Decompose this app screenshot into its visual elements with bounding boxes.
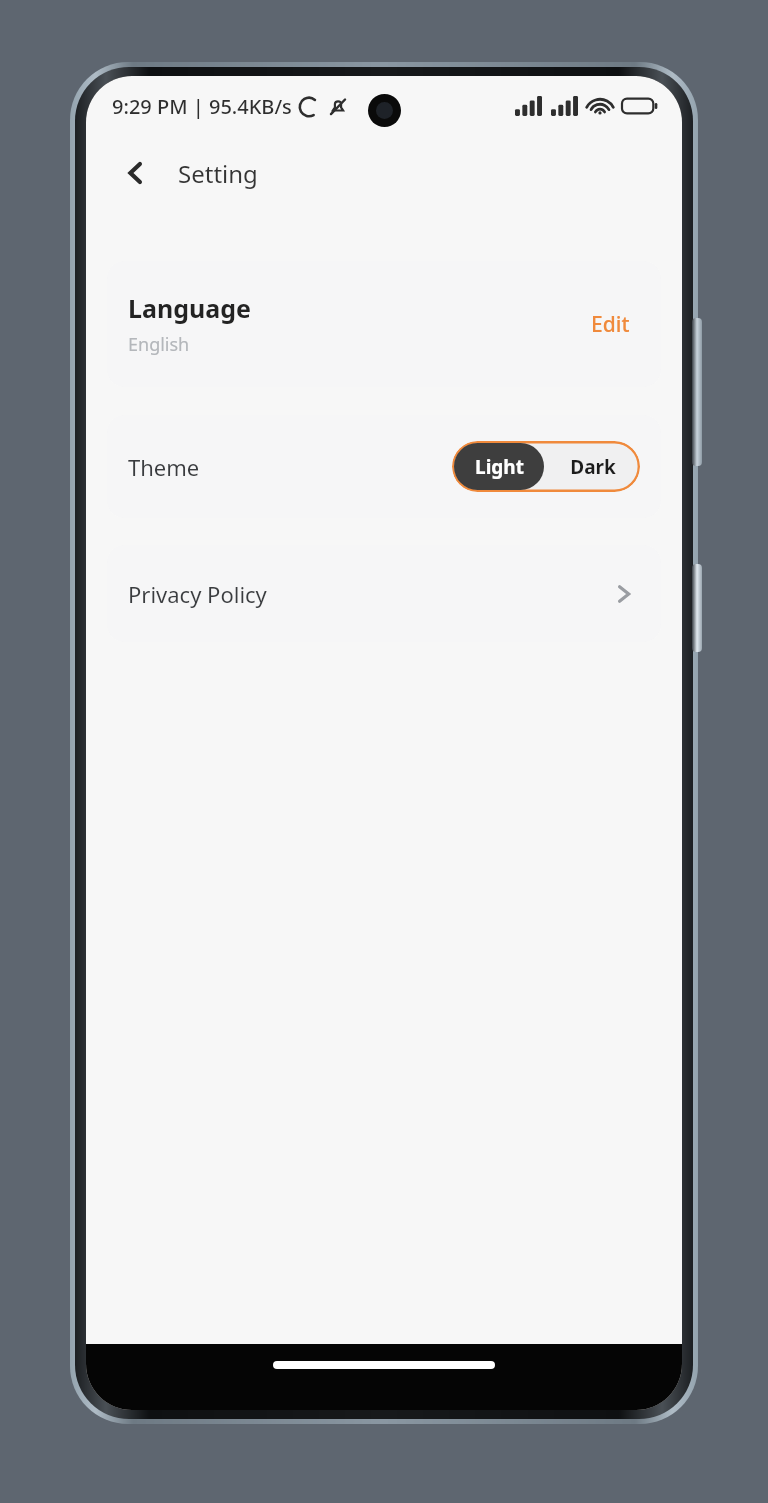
staticText: Privacy Policy [128, 579, 611, 609]
staticText: Light [475, 454, 524, 480]
staticText: Setting [178, 157, 258, 190]
staticText: Dark [570, 454, 616, 480]
staticText: Language [128, 291, 251, 325]
button[interactable]: Back [112, 149, 160, 197]
button[interactable]: Light [454, 443, 544, 490]
staticText: 9:29 PM | 95.4KB/s [112, 93, 292, 120]
staticText: Theme [128, 452, 452, 482]
staticText: Edit [591, 310, 630, 339]
staticText: English [128, 332, 190, 357]
button[interactable]: Privacy Policy [107, 545, 661, 642]
button[interactable]: Edit [581, 304, 640, 345]
button[interactable]: Dark [546, 441, 640, 492]
